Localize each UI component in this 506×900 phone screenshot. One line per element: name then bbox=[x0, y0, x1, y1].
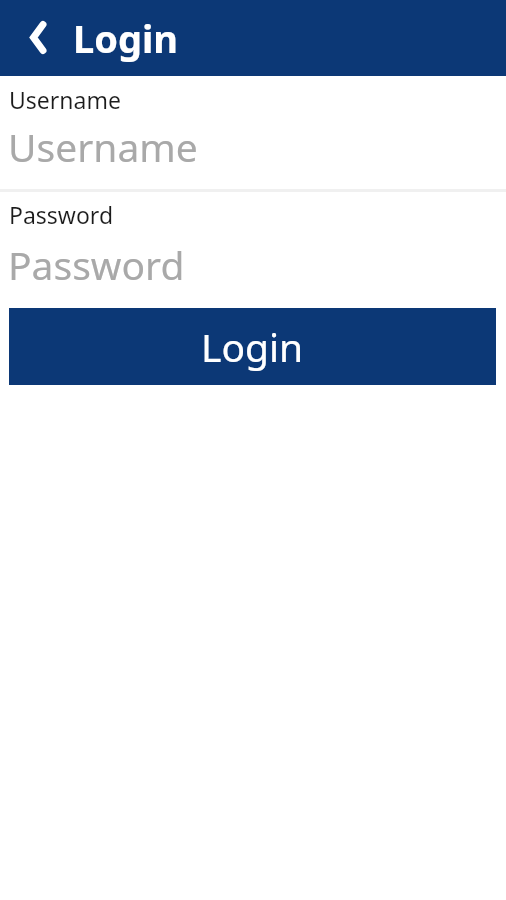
staticText: Login bbox=[73, 12, 179, 64]
button[interactable]: Login bbox=[9, 308, 496, 385]
staticText: Password bbox=[9, 199, 114, 230]
staticText: Login bbox=[201, 320, 304, 373]
button[interactable] bbox=[0, 192, 506, 305]
staticText: Password bbox=[8, 238, 185, 291]
button[interactable] bbox=[0, 76, 506, 189]
staticText: Username bbox=[8, 120, 198, 173]
button[interactable] bbox=[0, 0, 76, 76]
staticText: Username bbox=[9, 84, 121, 115]
